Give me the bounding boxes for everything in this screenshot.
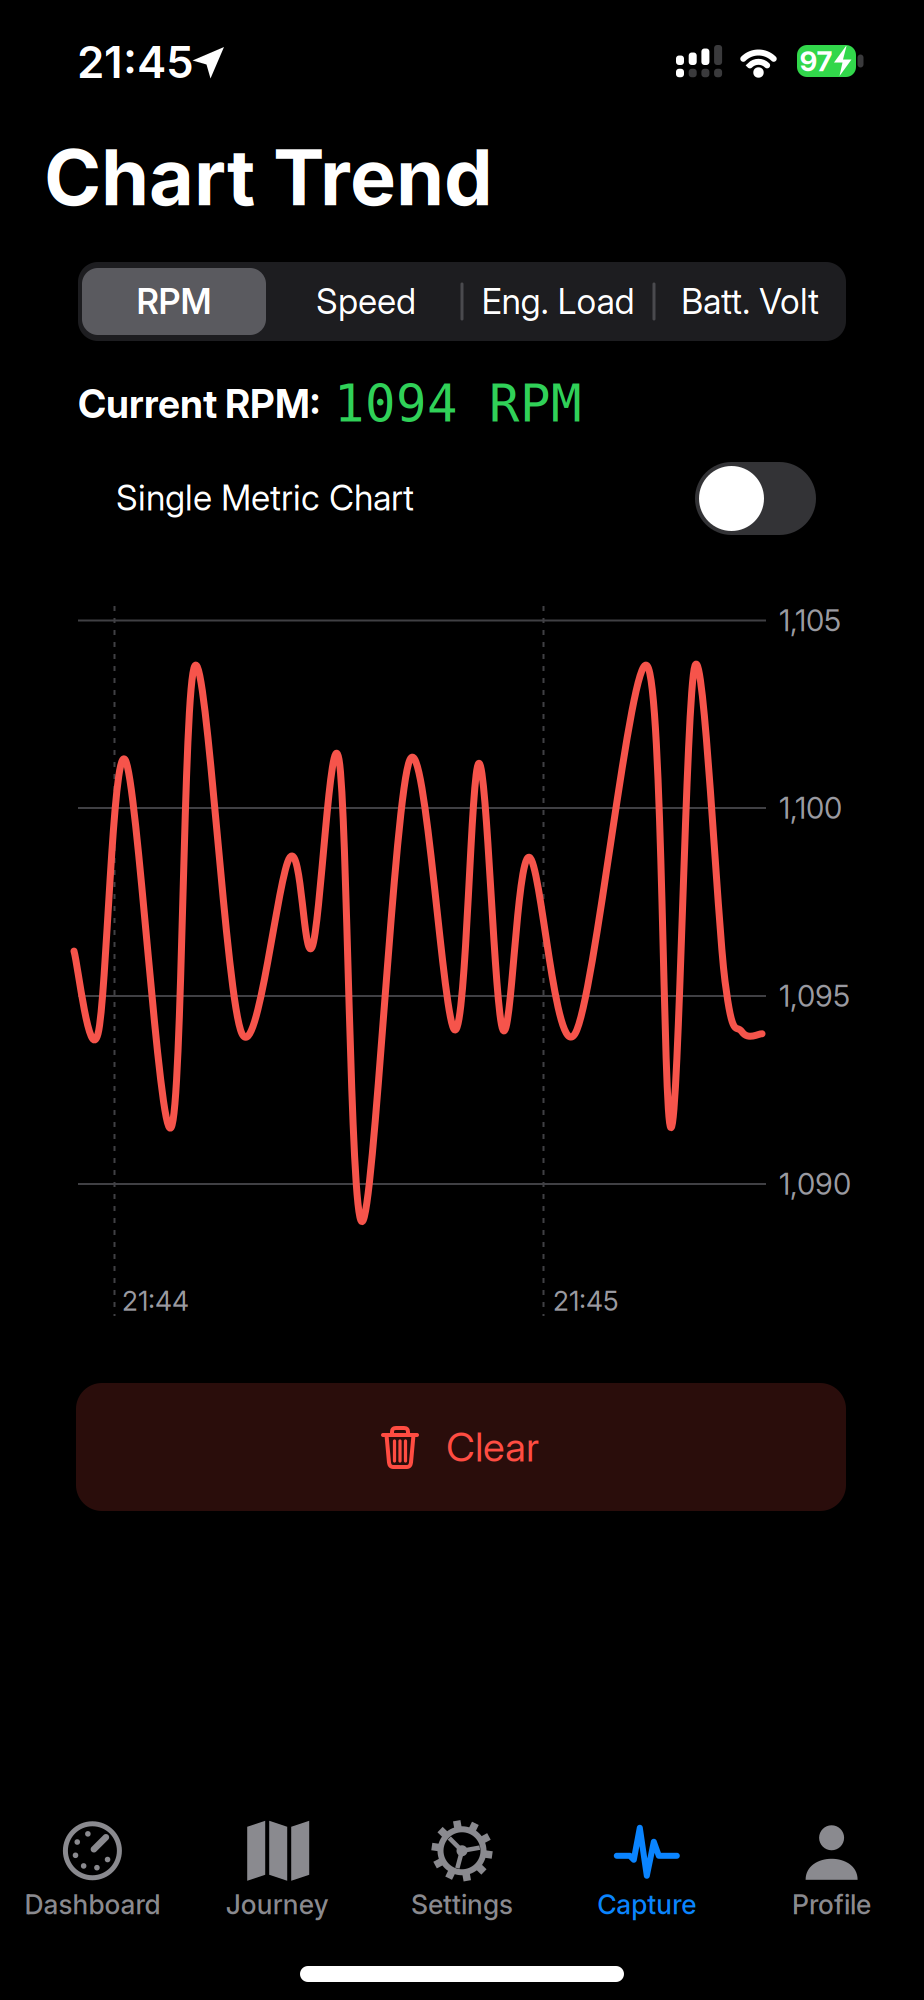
staticText: Current RPM:	[78, 381, 320, 427]
staticText: Journey	[226, 1889, 329, 1920]
staticText: Settings	[411, 1889, 513, 1920]
staticText: Profile	[792, 1889, 871, 1920]
button[interactable]: Eng. Load	[466, 268, 650, 335]
staticText: Batt. Volt	[681, 281, 819, 322]
staticText: RPM	[136, 281, 211, 322]
staticText: 1,095	[779, 979, 850, 1013]
staticText: 97	[799, 44, 832, 77]
button[interactable]: Capture	[559, 1822, 735, 1920]
button[interactable]: Profile	[744, 1822, 920, 1920]
button[interactable]: RPM	[82, 268, 266, 335]
staticText: Speed	[316, 281, 416, 322]
staticText: Capture	[597, 1889, 696, 1920]
staticText: 21:45	[553, 1285, 619, 1317]
staticText: 21:44	[122, 1285, 189, 1317]
staticText: 1,105	[779, 603, 841, 638]
staticText: 1,090	[779, 1167, 851, 1201]
staticText: Dashboard	[24, 1889, 160, 1920]
button[interactable]: Dashboard	[4, 1822, 180, 1920]
staticText: Eng. Load	[481, 281, 634, 322]
button[interactable]: Batt. Volt	[658, 268, 842, 335]
button[interactable]: Settings	[374, 1822, 550, 1920]
button[interactable]: Speed	[274, 268, 458, 335]
button[interactable]: Journey	[189, 1822, 365, 1920]
staticText: Chart Trend	[44, 131, 493, 223]
staticText: Single Metric Chart	[116, 478, 414, 518]
staticText: 1,100	[779, 791, 842, 825]
staticText: Clear	[446, 1423, 539, 1471]
staticText: 21:45	[77, 36, 194, 88]
button[interactable]: Single Metric Chart	[0, 453, 924, 543]
button[interactable]: Clear	[76, 1383, 846, 1511]
staticText: 1094 RPM	[334, 375, 582, 433]
